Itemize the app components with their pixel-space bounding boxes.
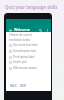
button[interactable]: More options: [45, 28, 49, 32]
button[interactable]: Fifth answer option: [6, 65, 51, 71]
staticText: Choose the correct: [9, 33, 32, 37]
button[interactable]: Third option label: [6, 54, 51, 60]
staticText: translation below: [9, 38, 31, 42]
button[interactable]: One more item here: [6, 42, 51, 48]
staticText: One more item here: [13, 43, 38, 47]
staticText: Second option text: [13, 49, 36, 53]
button[interactable]: Navigate up: [8, 28, 12, 32]
button[interactable]: Second option text: [6, 48, 51, 54]
button[interactable]: Search: [38, 28, 42, 32]
staticText: Quiz your language skills: [5, 4, 58, 10]
staticText: Third option label: [13, 55, 35, 59]
staticText: Fourth pick: [13, 60, 27, 64]
staticText: Fifth answer option: [13, 66, 37, 70]
staticText: Welcome: [14, 27, 30, 32]
button[interactable]: BACK: [10, 84, 17, 88]
button[interactable]: NEXT: [20, 84, 27, 88]
button[interactable]: Fourth pick: [6, 59, 51, 65]
